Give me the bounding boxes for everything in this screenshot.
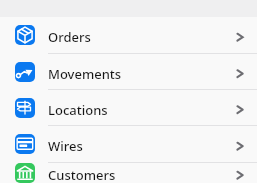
staticText: Customers: [48, 166, 116, 183]
staticText: Locations: [48, 101, 108, 119]
staticText: Orders: [48, 28, 91, 46]
button[interactable]: Movements: [0, 54, 257, 90]
button[interactable]: Orders: [0, 17, 257, 54]
button[interactable]: Locations: [0, 90, 257, 126]
button[interactable]: Customers: [0, 163, 257, 183]
staticText: Movements: [48, 65, 122, 83]
staticText: Wires: [48, 137, 83, 155]
button[interactable]: Wires: [0, 126, 257, 163]
